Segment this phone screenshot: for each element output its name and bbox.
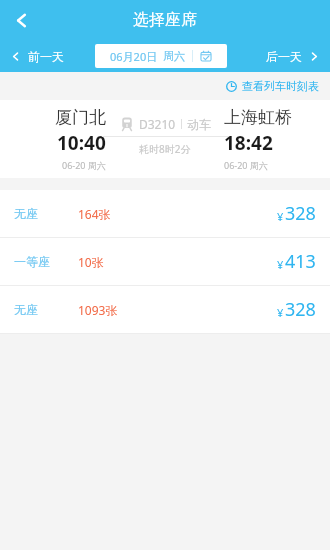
button[interactable]: 查看列车时刻表	[226, 79, 319, 93]
staticText: 164张	[78, 206, 111, 222]
staticText: 后一天	[266, 49, 302, 64]
button[interactable]: Back	[0, 0, 42, 40]
staticText: 10:40	[57, 130, 106, 156]
staticText: 厦门北	[55, 107, 106, 128]
staticText: 10张	[78, 254, 104, 270]
staticText: 06月20日	[110, 49, 158, 64]
staticText: 动车	[187, 117, 211, 132]
staticText: 06-20 周六	[224, 159, 268, 171]
staticText: 18:42	[224, 130, 273, 156]
staticText: 06-20 周六	[62, 159, 106, 171]
staticText: D3210	[139, 116, 176, 132]
staticText: ¥	[277, 257, 284, 272]
staticText: 查看列车时刻表	[242, 79, 319, 93]
button[interactable]: 前一天	[0, 40, 95, 72]
staticText: 周六	[163, 49, 185, 63]
staticText: 1093张	[78, 302, 118, 318]
staticText: 413	[285, 249, 316, 274]
staticText: 前一天	[28, 49, 64, 64]
staticText: 无座	[14, 302, 38, 317]
staticText: 无座	[14, 206, 38, 221]
button[interactable]: 06月20日	[95, 44, 227, 68]
button[interactable]: 一等座	[0, 238, 330, 285]
staticText: 328	[285, 297, 316, 322]
staticText: 上海虹桥	[224, 107, 292, 128]
staticText: 选择座席	[133, 10, 197, 30]
staticText: ¥	[277, 305, 284, 320]
staticText: 一等座	[14, 254, 50, 269]
button[interactable]: 后一天	[266, 40, 330, 72]
staticText: ¥	[277, 209, 284, 224]
staticText: 耗时8时2分	[139, 142, 191, 156]
staticText: 328	[285, 201, 316, 226]
button[interactable]: 无座	[0, 286, 330, 333]
button[interactable]: 无座	[0, 190, 330, 237]
